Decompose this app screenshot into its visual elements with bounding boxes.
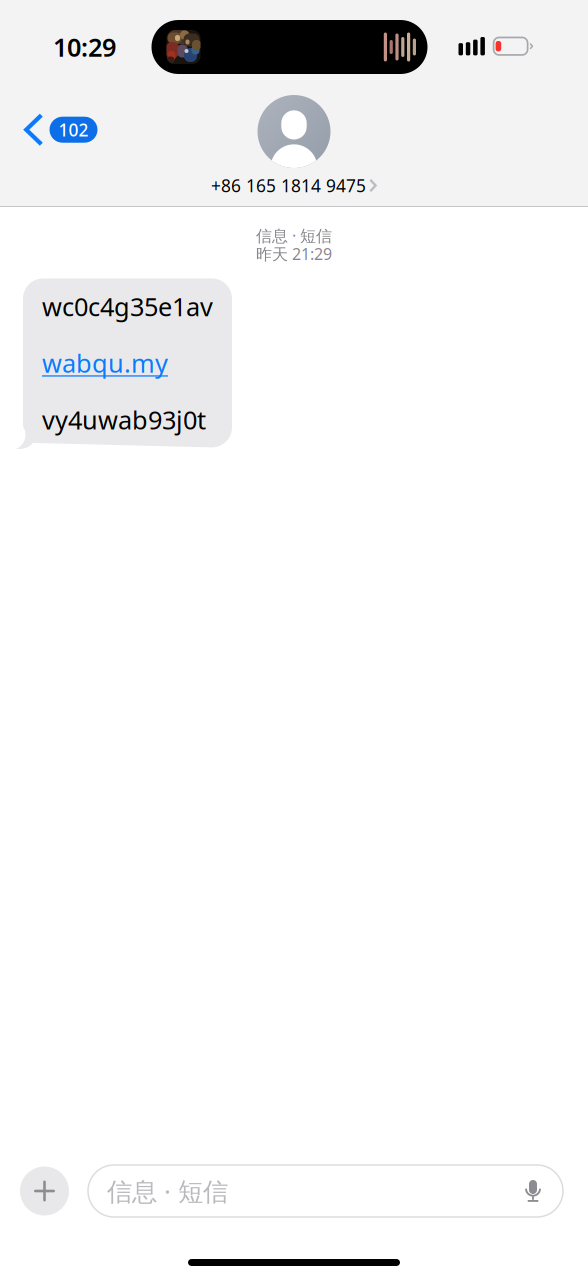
staticText: +86 165 1814 9475 [211,174,366,197]
staticText: vy4uwab93j0t [42,403,206,436]
button[interactable]: Back [0,105,111,154]
staticText: wabqu.my [42,346,168,380]
staticText: 信息 · 短信 [107,1174,228,1208]
staticText: 102 [58,118,88,141]
staticText: 信息 · 短信 [256,225,332,246]
staticText: 10:29 [53,30,116,64]
staticText: wc0c4g35e1av [42,289,213,323]
button[interactable]: Add attachment [20,1166,69,1215]
button[interactable]: Message text field [88,1165,563,1217]
staticText: 昨天 21:29 [256,243,332,264]
button[interactable]: Contact details [211,95,377,197]
